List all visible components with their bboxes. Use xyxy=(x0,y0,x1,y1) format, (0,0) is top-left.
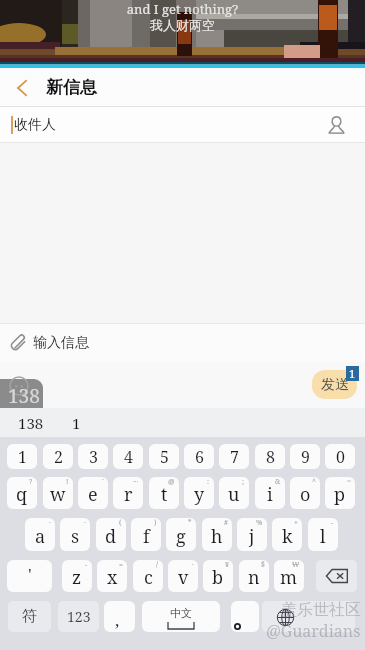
staticText: e xyxy=(88,482,98,507)
button[interactable]: s xyxy=(60,518,90,551)
staticText: 新信息 xyxy=(46,77,97,98)
button[interactable]: 1 xyxy=(7,444,37,469)
button[interactable]: x xyxy=(97,560,127,592)
button[interactable]: 发送 xyxy=(312,370,357,399)
staticText: 输入信息 xyxy=(33,334,89,352)
button[interactable]: q xyxy=(7,477,37,509)
button[interactable]: 6 xyxy=(184,444,214,469)
button[interactable]: l xyxy=(308,518,338,551)
staticText: ' xyxy=(28,563,32,586)
button[interactable]: 5 xyxy=(149,444,179,469)
button[interactable] xyxy=(231,601,259,632)
button[interactable]: 8 xyxy=(255,444,285,469)
button[interactable]: i xyxy=(255,477,285,509)
button[interactable]: Space xyxy=(142,601,220,632)
staticText: 9 xyxy=(301,446,310,468)
button[interactable]: Back xyxy=(0,68,46,107)
button[interactable]: v xyxy=(168,560,198,592)
button[interactable]: Backspace xyxy=(316,560,357,592)
staticText: - xyxy=(85,560,88,570)
staticText: 符 xyxy=(22,607,37,626)
staticText: = xyxy=(119,560,123,570)
button[interactable]: z xyxy=(62,560,92,592)
button[interactable]: y xyxy=(184,477,214,509)
button[interactable]: 138 xyxy=(18,413,44,433)
staticText: n xyxy=(248,565,260,590)
staticText: @ xyxy=(168,477,175,487)
button[interactable]: , xyxy=(104,601,135,632)
staticText: 6 xyxy=(195,446,204,468)
staticText: 5 xyxy=(160,446,169,468)
button[interactable]: 1 xyxy=(72,413,81,433)
staticText: , xyxy=(115,608,120,631)
button[interactable]: k xyxy=(272,518,302,551)
staticText: s xyxy=(71,524,80,549)
staticText: ··· xyxy=(133,477,139,487)
button[interactable]: 9 xyxy=(290,444,320,469)
staticText: 1 xyxy=(18,446,27,468)
button[interactable]: 输入信息 xyxy=(0,323,365,362)
staticText: f xyxy=(143,524,150,549)
button[interactable]: Switch language xyxy=(262,601,355,632)
staticText: d xyxy=(105,524,117,549)
button[interactable]: Pick contact xyxy=(318,107,354,143)
staticText: m xyxy=(280,565,298,590)
button[interactable]: 2 xyxy=(43,444,73,469)
staticText: 收件人 xyxy=(14,116,56,134)
button[interactable] xyxy=(0,379,43,408)
button[interactable]: 0 xyxy=(325,444,355,469)
staticText: ( xyxy=(119,518,122,528)
staticText: ) xyxy=(154,518,157,528)
staticText: v xyxy=(178,565,189,590)
button[interactable]: t xyxy=(149,477,179,509)
button[interactable]: c xyxy=(133,560,163,592)
staticText: 0 xyxy=(336,446,345,468)
button[interactable]: o xyxy=(290,477,320,509)
staticText: 8 xyxy=(266,446,275,468)
staticText: p xyxy=(334,482,346,507)
button[interactable]: d xyxy=(96,518,126,551)
button[interactable]: m xyxy=(274,560,304,592)
staticText: ^ xyxy=(312,477,316,487)
staticText: 138 xyxy=(8,383,40,409)
staticText: q xyxy=(16,482,28,507)
staticText: 盖乐世社区 xyxy=(281,600,361,620)
button[interactable]: 123 xyxy=(58,601,99,632)
staticText: r xyxy=(124,482,133,507)
button[interactable]: u xyxy=(219,477,249,509)
staticText: c xyxy=(144,565,153,590)
staticText: 123 xyxy=(67,607,91,626)
button[interactable]: p xyxy=(325,477,355,509)
button[interactable]: 7 xyxy=(219,444,249,469)
staticText: @Guardians xyxy=(266,620,361,642)
staticText: & xyxy=(275,477,281,487)
button[interactable]: 4 xyxy=(113,444,143,469)
button[interactable]: r xyxy=(113,477,143,509)
staticText: 7 xyxy=(230,446,239,468)
staticText: : xyxy=(207,477,210,487)
staticText: 3 xyxy=(89,446,98,468)
staticText: u xyxy=(228,482,240,507)
staticText: j xyxy=(249,524,255,549)
staticText: - xyxy=(331,518,334,528)
staticText: z xyxy=(72,565,82,590)
staticText: l xyxy=(320,524,326,549)
button[interactable]: e xyxy=(78,477,108,509)
button[interactable]: j xyxy=(237,518,267,551)
button[interactable]: w xyxy=(43,477,73,509)
staticText: # xyxy=(224,518,228,528)
staticText: * xyxy=(188,518,192,528)
staticText: · xyxy=(192,560,194,570)
button[interactable]: 收件人 xyxy=(0,107,365,143)
button[interactable]: 符 xyxy=(8,601,51,632)
button[interactable]: f xyxy=(131,518,161,551)
staticText: / xyxy=(156,560,159,570)
button[interactable]: ' xyxy=(7,560,52,592)
button[interactable]: a xyxy=(25,518,55,551)
button[interactable]: h xyxy=(202,518,232,551)
button[interactable]: b xyxy=(203,560,233,592)
button[interactable]: n xyxy=(239,560,269,592)
staticText: y xyxy=(194,482,205,507)
button[interactable]: g xyxy=(166,518,196,551)
button[interactable]: 3 xyxy=(78,444,108,469)
